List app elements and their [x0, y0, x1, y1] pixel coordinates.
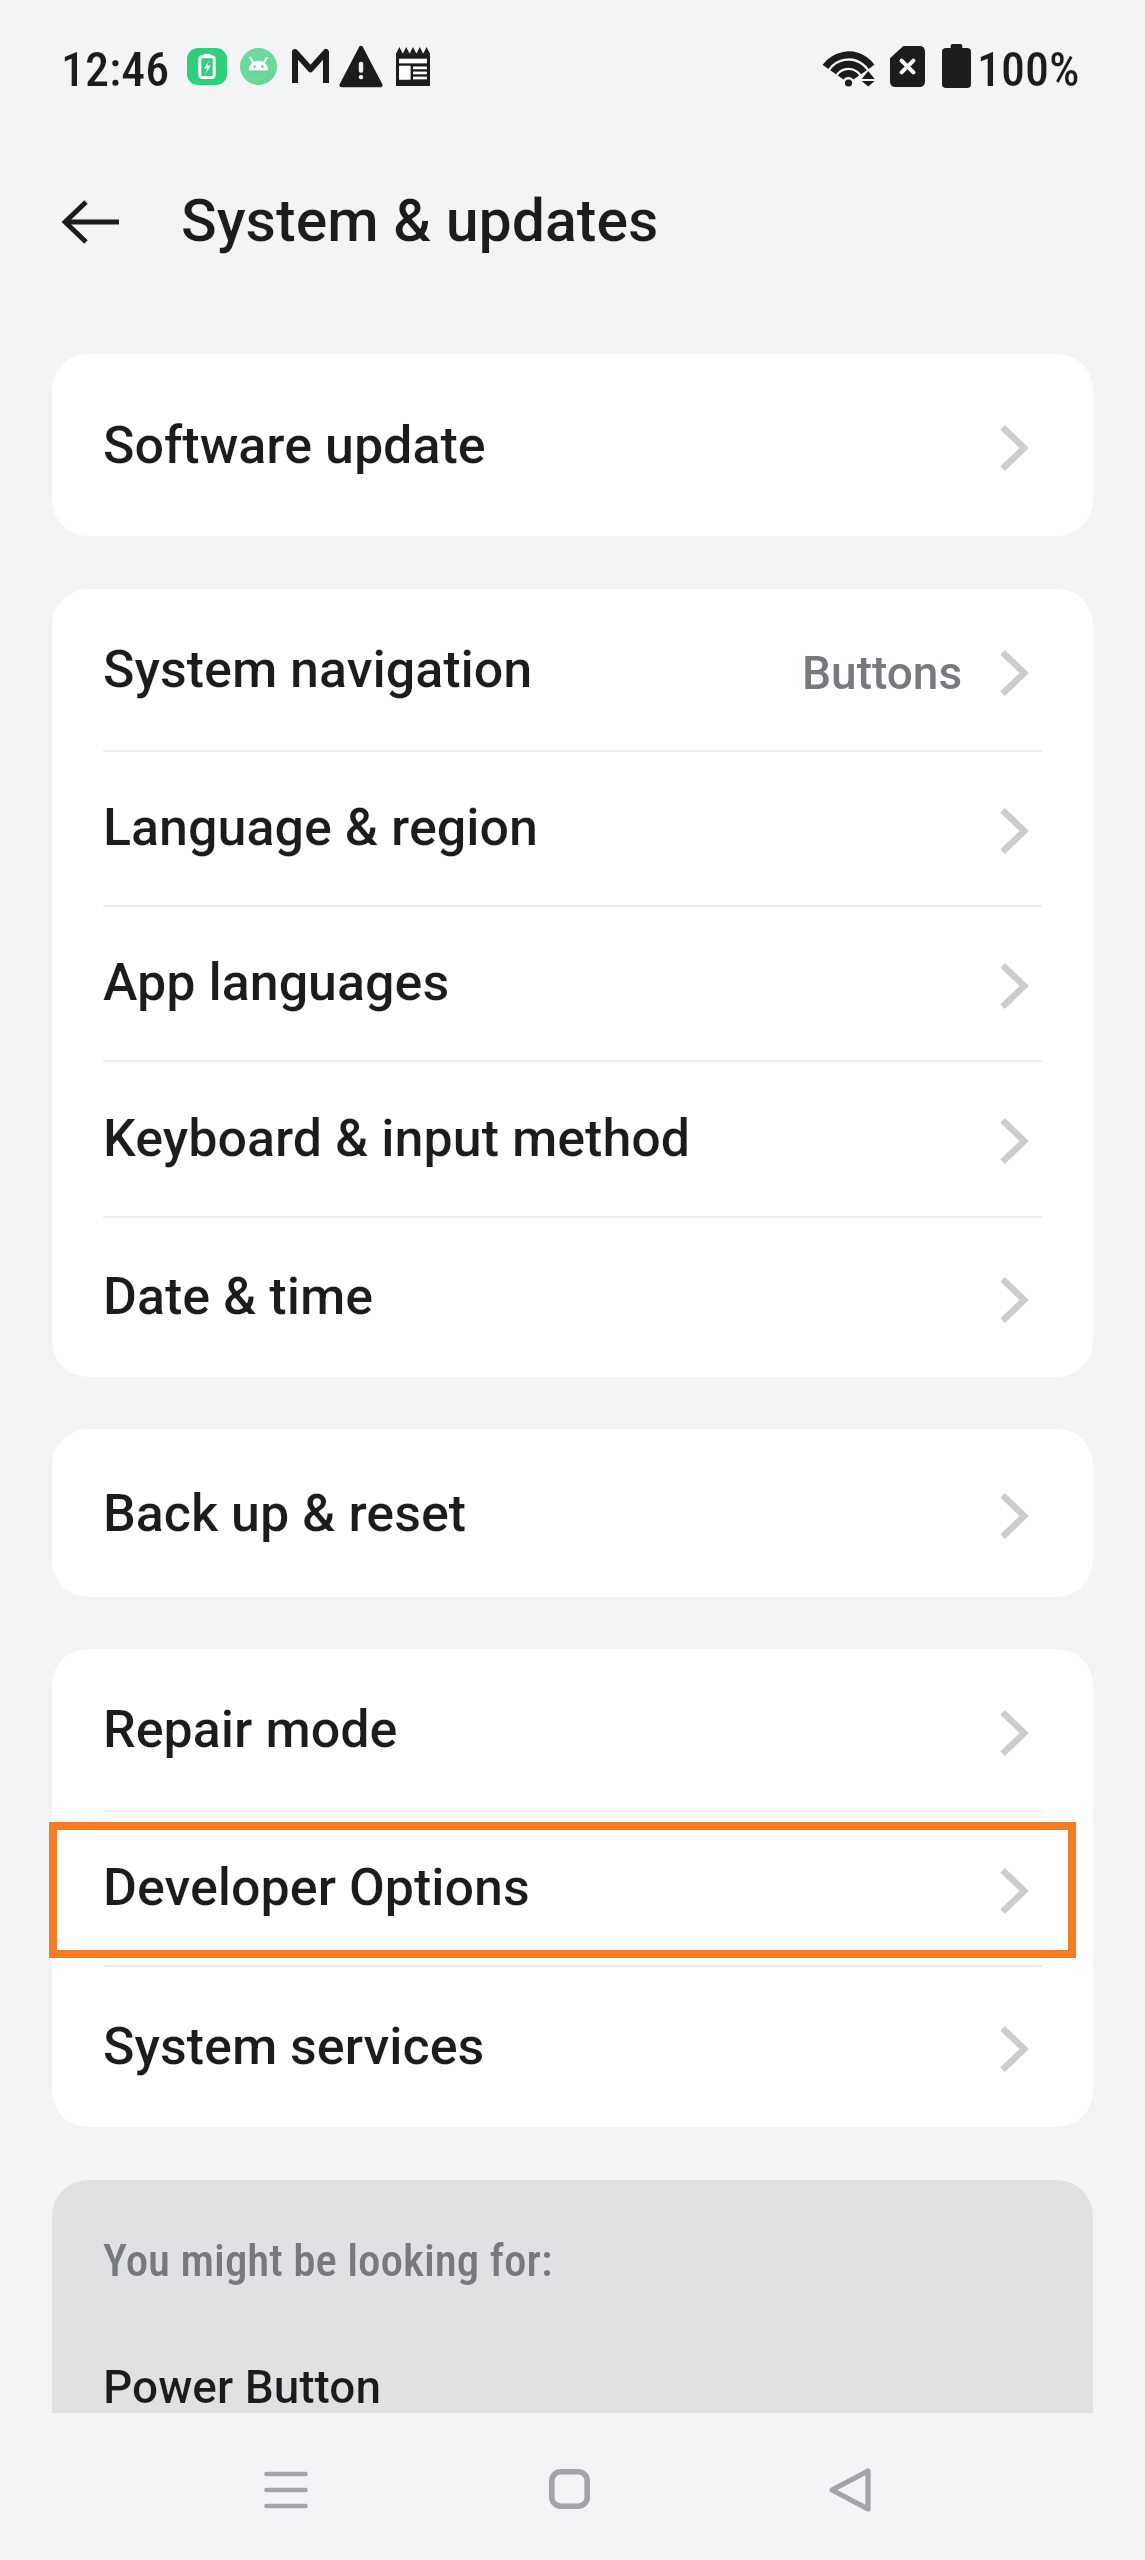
button[interactable]: Navigate up	[30, 163, 148, 281]
staticText: Software update	[103, 415, 486, 476]
staticText: System & updates	[181, 186, 659, 255]
staticText: 100%	[977, 41, 1080, 97]
staticText: Language & region	[103, 797, 538, 858]
staticText: System services	[103, 2016, 485, 2077]
button[interactable]: Language & region	[52, 750, 1093, 905]
button[interactable]: Date & time	[52, 1216, 1093, 1377]
button[interactable]: Back up & reset	[52, 1429, 1093, 1597]
button[interactable]: Software update	[52, 354, 1093, 536]
staticText: System navigation	[103, 639, 533, 700]
button[interactable]: App languages	[52, 905, 1093, 1060]
staticText: Buttons	[802, 646, 963, 700]
staticText: 12:46	[61, 41, 170, 97]
button[interactable]: System navigation	[52, 589, 1093, 750]
staticText: You might be looking for:	[103, 2234, 553, 2287]
button[interactable]: Recent apps	[230, 2433, 340, 2543]
staticText: Keyboard & input method	[103, 1108, 691, 1169]
button[interactable]: Back	[794, 2433, 904, 2543]
button[interactable]: You might be looking for:	[52, 2180, 1093, 2413]
staticText: Back up & reset	[103, 1483, 467, 1544]
staticText: Repair mode	[103, 1699, 398, 1760]
button[interactable]: System services	[52, 1965, 1093, 2127]
button[interactable]: Repair mode	[52, 1649, 1093, 1810]
button[interactable]: Keyboard & input method	[52, 1060, 1093, 1216]
staticText: Developer Options	[103, 1857, 530, 1918]
staticText: Date & time	[103, 1266, 374, 1327]
button[interactable]: Home	[514, 2433, 624, 2543]
staticText: Power Button	[103, 2360, 382, 2413]
button[interactable]: Developer Options	[52, 1810, 1093, 1965]
staticText: App languages	[103, 952, 450, 1013]
